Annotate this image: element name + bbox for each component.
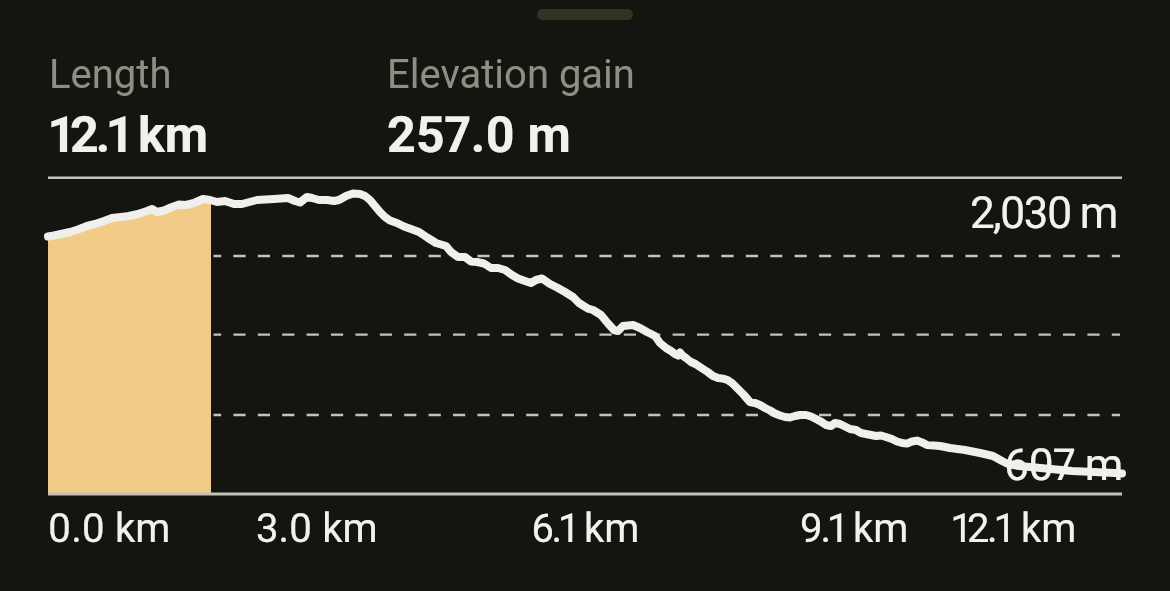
- staticText: km: [853, 505, 909, 552]
- staticText: 257.0 m: [387, 106, 571, 165]
- staticText: 3.0 km: [256, 505, 378, 552]
- staticText: 12.1: [952, 505, 1011, 552]
- staticText: 0.0 km: [48, 505, 171, 552]
- button[interactable]: [40, 44, 350, 154]
- button[interactable]: Elevation profile chart: [48, 177, 1122, 495]
- staticText: 9.1: [800, 505, 844, 552]
- staticText: km: [138, 106, 209, 165]
- staticText: 2,030 m: [970, 187, 1117, 239]
- staticText: 12.1: [49, 106, 129, 165]
- staticText: km: [1021, 505, 1077, 552]
- staticText: km: [584, 505, 640, 552]
- staticText: Length: [49, 51, 172, 98]
- button[interactable]: Drag handle: [537, 9, 633, 20]
- staticText: 6.1: [531, 505, 575, 552]
- staticText: Elevation gain: [387, 51, 635, 98]
- staticText: 607 m: [1004, 439, 1123, 491]
- button[interactable]: [378, 44, 688, 154]
